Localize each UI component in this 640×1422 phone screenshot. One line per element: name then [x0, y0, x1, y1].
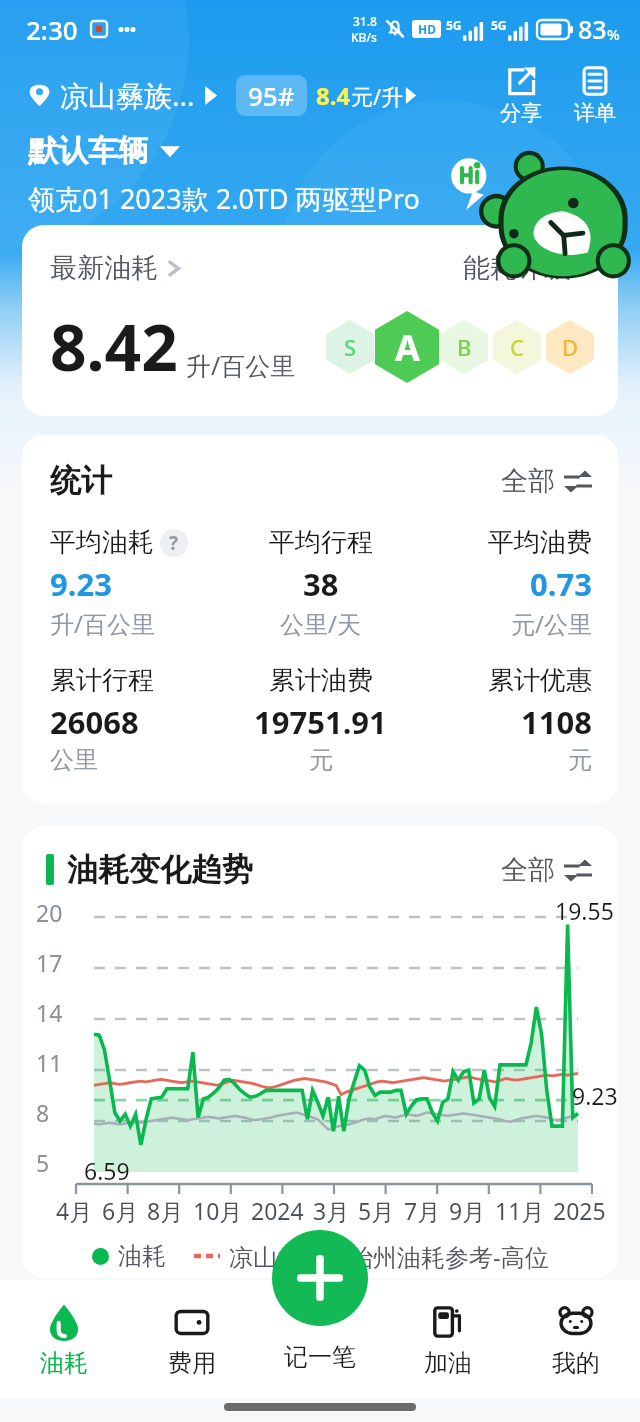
staticText: 9月 [449, 1195, 486, 1226]
staticText: 升/百公里 [50, 607, 155, 640]
button[interactable]: 加油 [384, 1280, 512, 1398]
staticText: 8.42 [50, 303, 178, 390]
staticText: D [562, 332, 579, 362]
staticText: 5G [446, 17, 462, 33]
staticText: 14 [36, 997, 63, 1028]
staticText: ••• [118, 18, 137, 40]
staticText: 7月 [404, 1195, 441, 1226]
staticText: 平均行程 [269, 526, 373, 559]
staticText: 详单 [574, 100, 616, 126]
staticText: 元 [309, 745, 333, 775]
staticText: KB/s [351, 29, 377, 45]
staticText: B [457, 332, 472, 362]
button[interactable]: A [375, 311, 439, 383]
staticText: 平均油费 [488, 526, 592, 559]
staticText: 26068 [50, 701, 139, 743]
button[interactable]: 累计优惠 [411, 664, 592, 775]
staticText: 全部 [501, 464, 555, 498]
staticText: S [344, 332, 357, 362]
staticText: 83 [578, 12, 607, 46]
button[interactable]: C [493, 320, 541, 374]
staticText: 我的 [552, 1348, 600, 1378]
staticText: 累计油费 [269, 664, 373, 697]
staticText: 凉山彝族... [60, 76, 195, 114]
staticText: 统计 [50, 461, 112, 500]
staticText: 2025 [553, 1195, 606, 1226]
button[interactable]: 平均行程 [230, 526, 411, 640]
staticText: ? [169, 530, 179, 556]
staticText: 19.55 [555, 895, 614, 926]
staticText: 17 [36, 947, 63, 978]
staticText: 31.8 [353, 13, 377, 29]
staticText: 能耗评级 [463, 251, 571, 285]
button[interactable]: 累计油费 [230, 664, 411, 775]
staticText: 6.59 [84, 1155, 130, 1186]
staticText: 记一笔 [284, 1342, 356, 1372]
staticText: 5G [491, 17, 507, 33]
staticText: 元 [568, 745, 592, 775]
staticText: 领克01 2023款 2.0TD 两驱型Pro [28, 180, 420, 217]
staticText: 凉山彝族自治州油耗参考-高位 [229, 1240, 549, 1273]
button[interactable]: 平均油耗 [50, 526, 230, 640]
button[interactable]: 95# [236, 75, 417, 116]
button[interactable]: 油耗 [0, 1280, 128, 1398]
button[interactable]: 全部 [501, 464, 592, 498]
button[interactable]: 记一笔 添加记录 [272, 1230, 368, 1326]
staticText: 升/百公里 [186, 348, 296, 382]
button[interactable]: 默认车辆 [28, 132, 180, 170]
staticText: 油耗 [40, 1348, 88, 1378]
staticText: 95# [248, 78, 295, 113]
button[interactable]: 能耗评级 [463, 251, 594, 285]
staticText: 元/升 [351, 81, 404, 111]
staticText: 6月 [102, 1195, 139, 1226]
staticText: 10月 [193, 1195, 243, 1226]
staticText: 11 [36, 1047, 63, 1078]
button[interactable]: 最新油耗 [50, 251, 181, 285]
staticText: 5月 [358, 1195, 395, 1226]
staticText: A [395, 323, 420, 372]
staticText: 分享 [500, 100, 542, 126]
staticText: 9.23 [572, 1080, 618, 1111]
staticText: C [510, 332, 524, 362]
button[interactable]: 费用 [128, 1280, 256, 1398]
button[interactable]: S [326, 320, 374, 374]
staticText: 元/公里 [511, 607, 592, 640]
staticText: 0.73 [530, 563, 592, 605]
button[interactable]: 累计行程 [50, 664, 230, 775]
staticText: 2:30 [26, 12, 78, 47]
staticText: 9.23 [50, 563, 112, 605]
button[interactable]: 平均油费 [411, 526, 592, 640]
staticText: 2024 [251, 1195, 304, 1226]
staticText: 1108 [521, 701, 592, 743]
staticText: 费用 [168, 1348, 216, 1378]
button[interactable]: B [440, 320, 488, 374]
staticText: 8 [36, 1097, 50, 1128]
staticText: 油耗 [118, 1241, 166, 1271]
staticText: 20 [36, 897, 63, 928]
staticText: 油耗变化趋势 [67, 850, 253, 889]
staticText: 公里 [50, 745, 98, 775]
button[interactable]: 全部 [501, 853, 592, 887]
staticText: 8月 [147, 1195, 184, 1226]
button[interactable]: 我的 [512, 1280, 640, 1398]
staticText: 全部 [501, 853, 555, 887]
staticText: 38 [303, 563, 339, 605]
button[interactable]: 凉山彝族... [28, 70, 218, 120]
staticText: HD [418, 21, 436, 37]
staticText: 4月 [56, 1195, 93, 1226]
staticText: 累计优惠 [488, 664, 592, 697]
staticText: 最新油耗 [50, 251, 158, 285]
staticText: % [607, 24, 620, 44]
button[interactable]: 详单 [570, 64, 620, 126]
staticText: 默认车辆 [28, 132, 148, 170]
staticText: 加油 [424, 1348, 472, 1378]
staticText: 公里/天 [280, 607, 361, 640]
button[interactable]: 分享 [496, 64, 546, 126]
staticText: 8.4 [316, 79, 351, 112]
staticText: 11月 [495, 1195, 545, 1226]
staticText: 19751.91 [254, 701, 387, 743]
staticText: 累计行程 [50, 664, 154, 697]
staticText: 3月 [313, 1195, 350, 1226]
button[interactable]: D [546, 320, 594, 374]
staticText: 平均油耗 [50, 526, 154, 559]
